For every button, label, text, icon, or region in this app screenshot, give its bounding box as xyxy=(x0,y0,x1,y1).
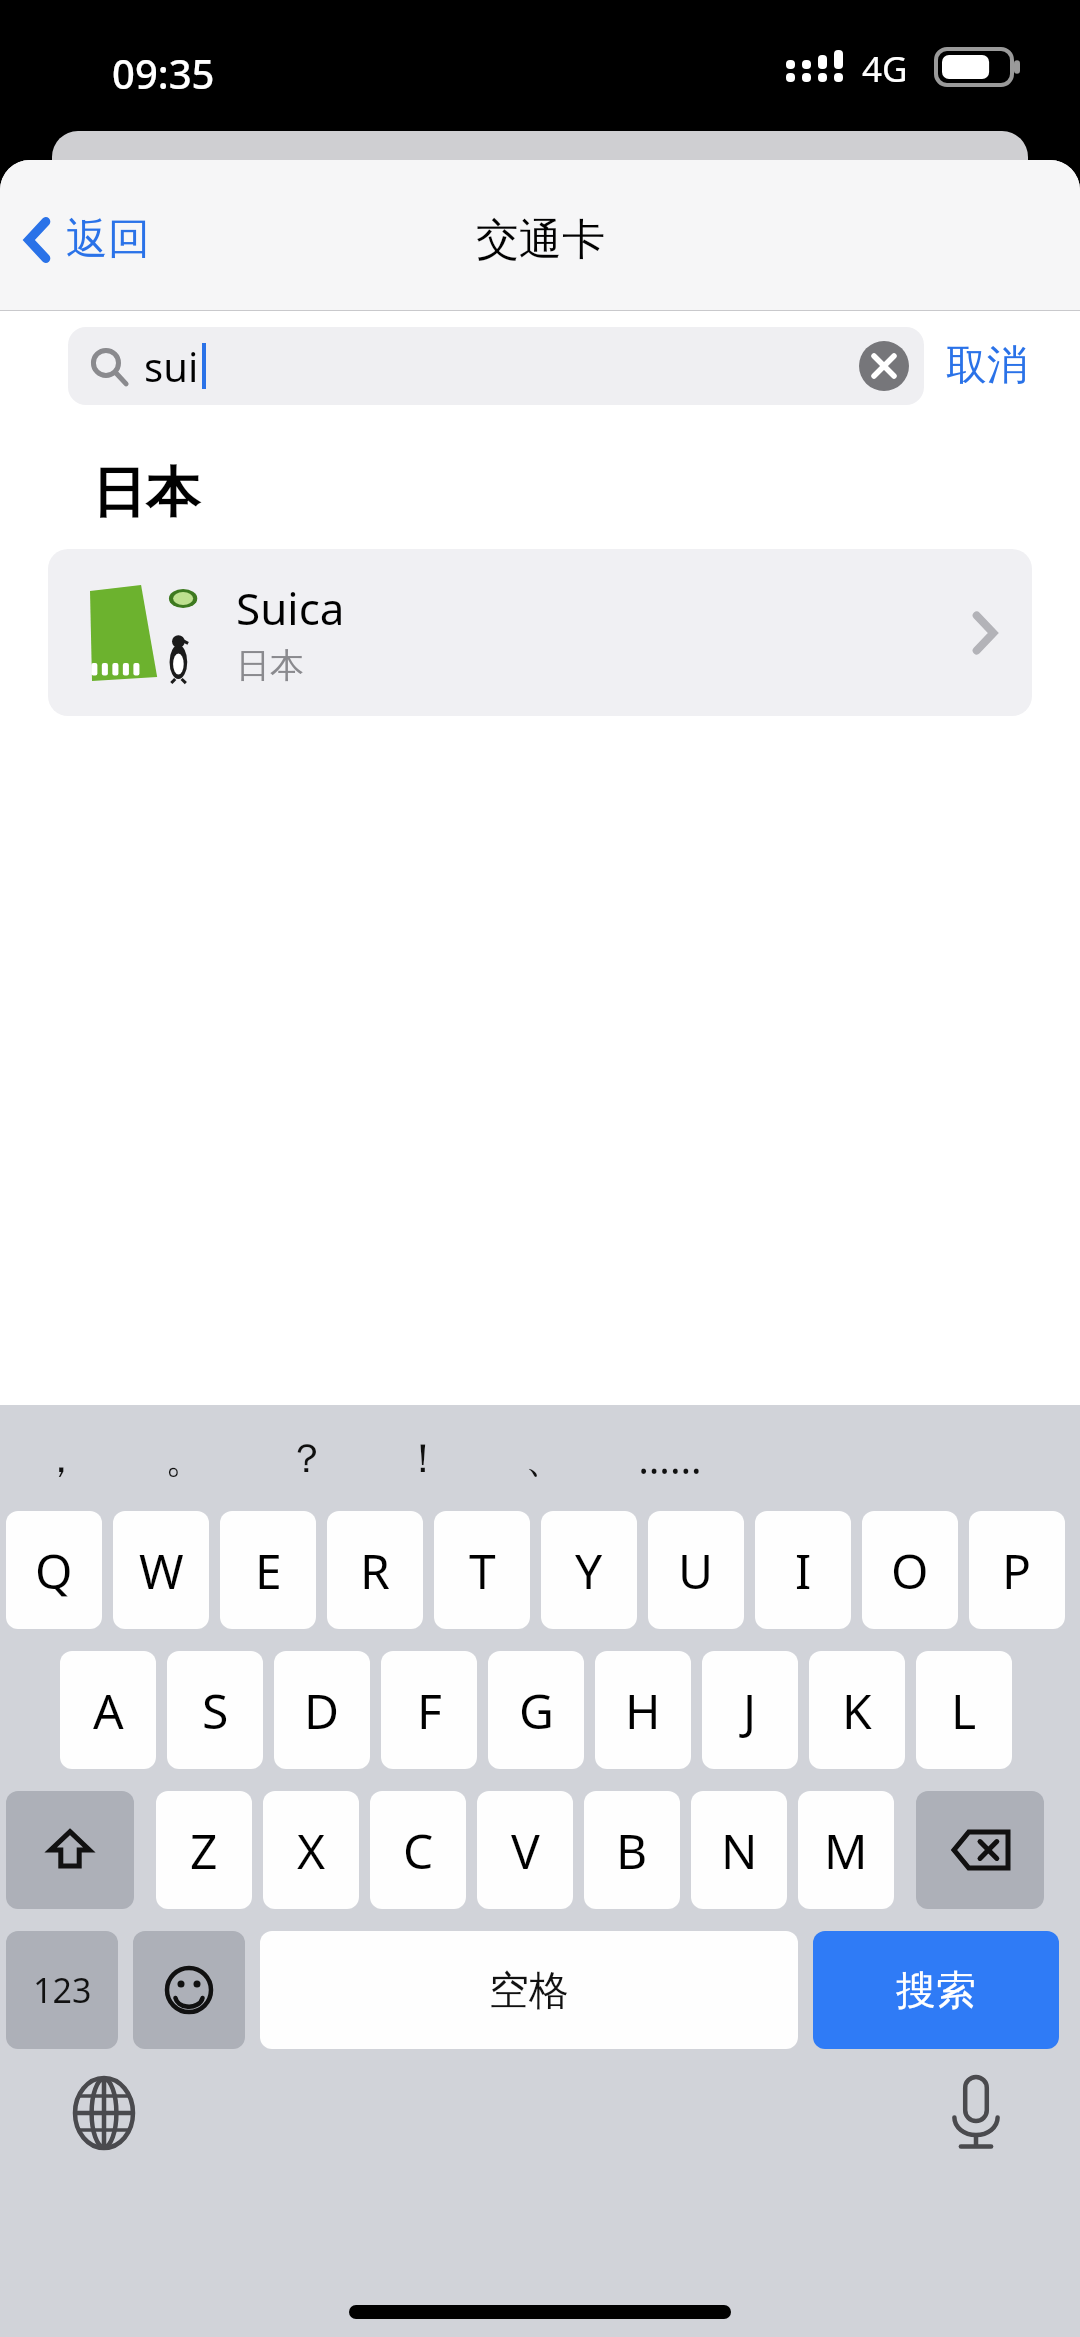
staticText: 取消 xyxy=(946,340,1028,392)
staticText: X xyxy=(297,1818,326,1883)
staticText: 返回 xyxy=(66,213,150,266)
staticText: Q xyxy=(35,1538,73,1603)
button[interactable]: 取消 xyxy=(924,330,1050,402)
button[interactable]: F xyxy=(381,1651,477,1769)
button[interactable]: G xyxy=(488,1651,584,1769)
button[interactable]: Q xyxy=(6,1511,102,1629)
staticText: 4G xyxy=(862,45,908,93)
staticText: ？ xyxy=(287,1433,327,1483)
staticText: 123 xyxy=(33,1967,92,2013)
button[interactable]: ， xyxy=(16,1423,106,1493)
button[interactable]: 搜索 xyxy=(813,1931,1059,2049)
button[interactable]: Y xyxy=(541,1511,637,1629)
staticText: G xyxy=(519,1678,554,1743)
staticText: O xyxy=(891,1538,929,1603)
staticText: ！ xyxy=(403,1433,443,1483)
button[interactable]: E xyxy=(220,1511,316,1629)
staticText: 09:35 xyxy=(112,46,215,100)
button[interactable]: ！ xyxy=(378,1423,468,1493)
button[interactable]: ？ xyxy=(262,1423,352,1493)
staticText: W xyxy=(139,1538,184,1603)
button[interactable]: sui xyxy=(68,327,924,405)
button[interactable]: Switch keyboard language xyxy=(62,2071,146,2155)
button[interactable]: 。 xyxy=(140,1423,230,1493)
button[interactable]: U xyxy=(648,1511,744,1629)
staticText: S xyxy=(202,1678,229,1743)
button[interactable]: 、 xyxy=(500,1423,590,1493)
button[interactable]: D xyxy=(274,1651,370,1769)
staticText: I xyxy=(795,1538,812,1603)
button[interactable]: Dictation xyxy=(934,2071,1018,2155)
button[interactable]: 返回 xyxy=(0,205,166,274)
button[interactable]: 空格 xyxy=(260,1931,798,2049)
button[interactable]: N xyxy=(691,1791,787,1909)
button[interactable]: J xyxy=(702,1651,798,1769)
button[interactable]: C xyxy=(370,1791,466,1909)
staticText: T xyxy=(469,1538,496,1603)
button[interactable]: R xyxy=(327,1511,423,1629)
button[interactable]: H xyxy=(595,1651,691,1769)
button[interactable]: Clear text xyxy=(858,340,910,392)
staticText: K xyxy=(842,1678,872,1743)
button[interactable]: K xyxy=(809,1651,905,1769)
staticText: B xyxy=(616,1818,648,1883)
staticText: Y xyxy=(575,1538,603,1603)
button[interactable]: O xyxy=(862,1511,958,1629)
button[interactable]: B xyxy=(584,1791,680,1909)
button[interactable]: T xyxy=(434,1511,530,1629)
staticText: N xyxy=(721,1818,758,1883)
staticText: M xyxy=(824,1818,868,1883)
staticText: V xyxy=(511,1818,540,1883)
staticText: Z xyxy=(190,1818,218,1883)
button[interactable]: S xyxy=(167,1651,263,1769)
button[interactable]: Suica xyxy=(48,549,1032,716)
staticText: E xyxy=(255,1538,282,1603)
staticText: 空格 xyxy=(489,1965,569,2015)
staticText: 。 xyxy=(165,1433,205,1483)
staticText: U xyxy=(678,1538,714,1603)
button[interactable]: …… xyxy=(625,1423,715,1493)
staticText: H xyxy=(625,1678,661,1743)
button[interactable]: P xyxy=(969,1511,1065,1629)
staticText: A xyxy=(93,1678,124,1743)
button[interactable]: M xyxy=(798,1791,894,1909)
button[interactable]: A xyxy=(60,1651,156,1769)
staticText: 日本 xyxy=(236,644,304,687)
staticText: F xyxy=(417,1678,442,1743)
staticText: 、 xyxy=(525,1433,565,1483)
staticText: …… xyxy=(638,1431,702,1485)
button[interactable]: L xyxy=(916,1651,1012,1769)
staticText: 搜索 xyxy=(896,1965,976,2015)
staticText: Suica xyxy=(236,578,345,638)
button[interactable]: X xyxy=(263,1791,359,1909)
button[interactable]: Shift xyxy=(6,1791,134,1909)
staticText: D xyxy=(304,1678,340,1743)
button[interactable]: Z xyxy=(156,1791,252,1909)
staticText: 交通卡 xyxy=(476,213,605,267)
staticText: J xyxy=(743,1678,757,1743)
button[interactable]: Emoji keyboard xyxy=(133,1931,245,2049)
staticText: R xyxy=(360,1538,390,1603)
button[interactable]: V xyxy=(477,1791,573,1909)
staticText: sui xyxy=(144,339,199,393)
staticText: ， xyxy=(41,1433,81,1483)
staticText: L xyxy=(951,1678,977,1743)
staticText: 日本 xyxy=(92,459,200,527)
staticText: P xyxy=(1002,1538,1032,1603)
staticText: C xyxy=(403,1818,434,1883)
button[interactable]: W xyxy=(113,1511,209,1629)
button[interactable]: 123 xyxy=(6,1931,118,2049)
button[interactable]: Backspace xyxy=(916,1791,1044,1909)
button[interactable]: I xyxy=(755,1511,851,1629)
